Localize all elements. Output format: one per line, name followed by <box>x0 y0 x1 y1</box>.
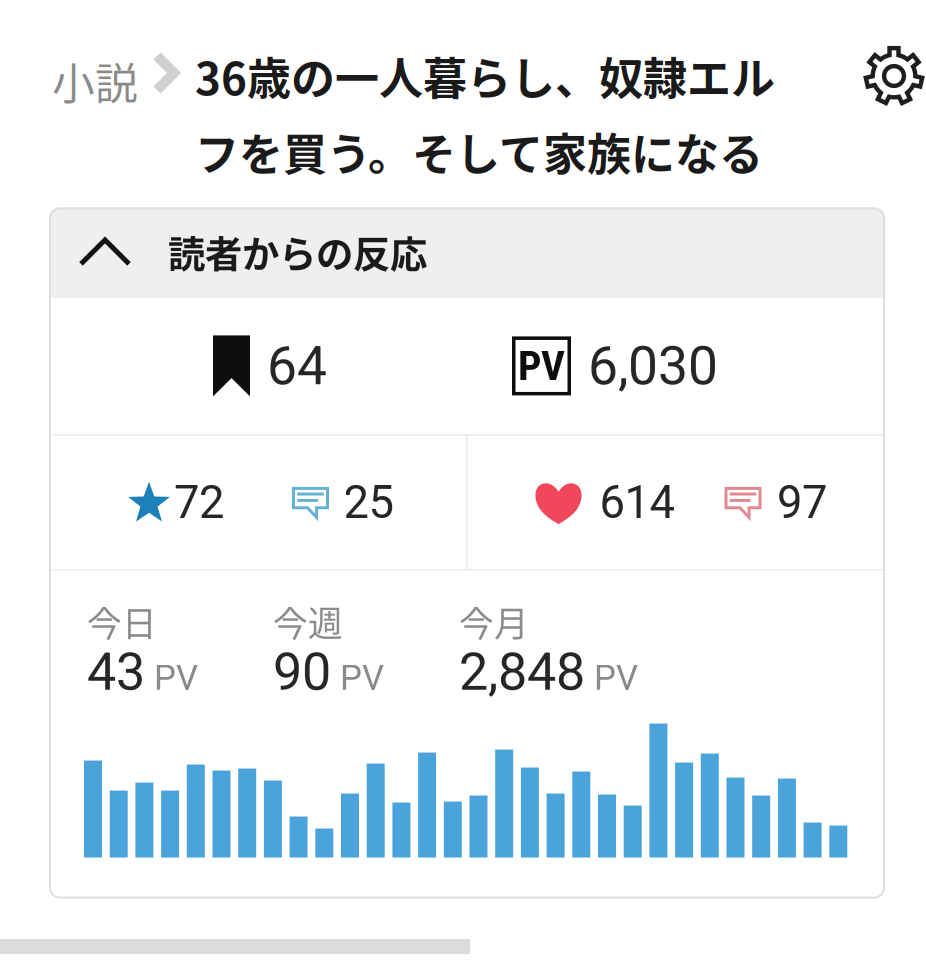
staticText: PV <box>340 658 384 698</box>
staticText: フを買う。そして家族になる <box>195 120 763 183</box>
staticText: 614 <box>599 476 674 529</box>
staticText: 90 <box>273 642 331 702</box>
staticText: 今日 <box>87 596 157 647</box>
button[interactable]: 読者からの反応 <box>49 207 885 296</box>
button[interactable]: Settings <box>864 46 924 106</box>
staticText: PV <box>518 342 565 390</box>
staticText: 36歳の一人暮らし、奴隷エル <box>195 44 775 108</box>
staticText: 2,848 <box>459 642 585 702</box>
staticText: 64 <box>267 335 327 397</box>
staticText: PV <box>154 658 198 698</box>
staticText: 6,030 <box>588 335 718 397</box>
staticText: 今月 <box>459 596 529 647</box>
staticText: 72 <box>174 476 224 529</box>
staticText: 今週 <box>273 596 343 647</box>
staticText: 読者からの反応 <box>168 225 427 279</box>
staticText: 25 <box>343 476 393 529</box>
button[interactable]: 小説 <box>52 44 138 112</box>
staticText: PV <box>594 658 638 698</box>
staticText: 43 <box>87 642 145 702</box>
staticText: 97 <box>777 476 827 529</box>
staticText: 小説 <box>52 50 138 112</box>
